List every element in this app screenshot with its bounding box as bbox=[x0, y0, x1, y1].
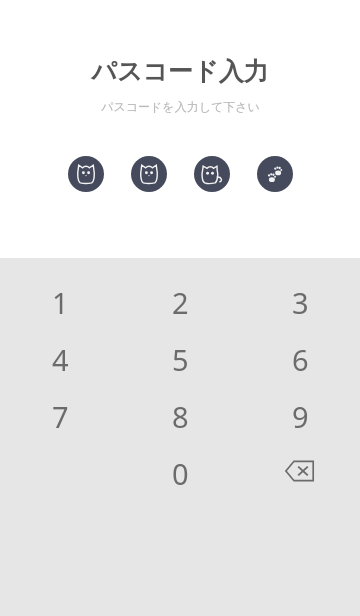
staticText: パスコードを入力して下さい bbox=[101, 99, 260, 114]
staticText: 9 bbox=[292, 397, 309, 431]
staticText: 2 bbox=[172, 283, 189, 317]
button[interactable]: 9 bbox=[240, 397, 360, 431]
staticText: 4 bbox=[52, 340, 69, 374]
button[interactable]: Passcode digit 3 bbox=[194, 156, 230, 192]
button[interactable]: 1 bbox=[0, 283, 120, 317]
staticText: 0 bbox=[172, 454, 189, 488]
button[interactable]: Passcode digit 4 bbox=[257, 156, 293, 192]
button[interactable]: 4 bbox=[0, 340, 120, 374]
staticText: パスコード入力 bbox=[91, 56, 269, 87]
button[interactable]: 2 bbox=[120, 283, 240, 317]
staticText: 8 bbox=[172, 397, 189, 431]
button[interactable]: 7 bbox=[0, 397, 120, 431]
button[interactable]: Passcode digit 1 bbox=[68, 156, 104, 192]
staticText: 7 bbox=[52, 397, 69, 431]
staticText: 3 bbox=[292, 283, 309, 317]
button[interactable]: 0 bbox=[120, 454, 240, 488]
button[interactable]: 3 bbox=[240, 283, 360, 317]
button[interactable]: 8 bbox=[120, 397, 240, 431]
staticText: 5 bbox=[172, 340, 189, 374]
button[interactable]: Passcode digit 2 bbox=[131, 156, 167, 192]
staticText: 1 bbox=[52, 283, 69, 317]
button[interactable]: 5 bbox=[120, 340, 240, 374]
button[interactable]: 6 bbox=[240, 340, 360, 374]
button[interactable]: Delete bbox=[240, 454, 360, 488]
staticText: 6 bbox=[292, 340, 309, 374]
